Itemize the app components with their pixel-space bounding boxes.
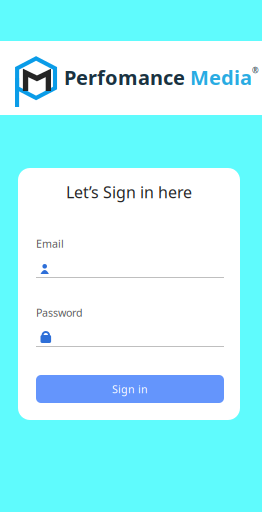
staticText: Perfomance — [64, 64, 185, 91]
staticText: Email — [36, 236, 64, 251]
button[interactable]: Sign in — [36, 375, 224, 403]
staticText: ® — [252, 65, 259, 76]
staticText: Password — [36, 305, 83, 320]
staticText: Media — [185, 64, 252, 91]
staticText: Let’s Sign in here — [66, 181, 192, 203]
staticText: Sign in — [112, 382, 148, 396]
